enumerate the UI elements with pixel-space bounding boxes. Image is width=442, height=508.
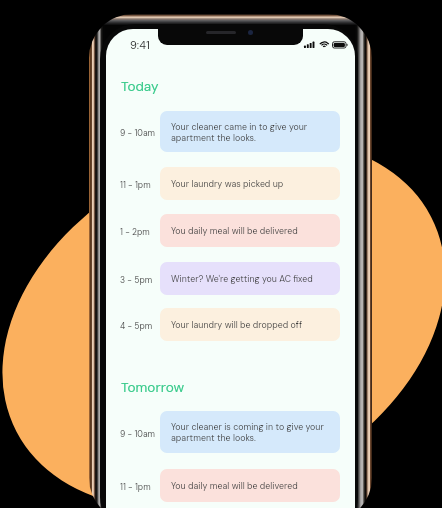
button[interactable]: 9 - 10am [106,411,355,453]
button[interactable]: 1 - 2pm [106,214,355,247]
staticText: Your cleaner came in to give your apartm… [171,121,329,143]
staticText: Your laundry was picked up [171,178,284,189]
staticText: 9:41 [130,38,150,52]
staticText: Winter? We're getting you AC fixed [171,273,313,284]
button[interactable]: 11 - 1pm [106,469,355,502]
staticText: You daily meal will be delivered [171,480,298,491]
button[interactable]: 4 - 5pm [106,308,355,341]
button[interactable]: 11 - 1pm [106,167,355,200]
staticText: You daily meal will be delivered [171,225,298,236]
staticText: Your laundry will be dropped off [171,319,303,330]
button[interactable]: 3 - 5pm [106,262,355,295]
staticText: 9 - 10am [120,128,160,139]
staticText: 3 - 5pm [120,275,160,286]
staticText: Tomorrow [121,379,185,397]
staticText: 4 - 5pm [120,321,160,332]
staticText: Today [121,78,159,96]
button[interactable]: 9 - 10am [106,111,355,152]
staticText: 9 - 10am [120,429,160,440]
staticText: Your cleaner is coming in to give your a… [171,421,329,443]
staticText: 11 - 1pm [120,180,160,191]
staticText: 11 - 1pm [120,482,160,493]
staticText: 1 - 2pm [120,227,160,238]
